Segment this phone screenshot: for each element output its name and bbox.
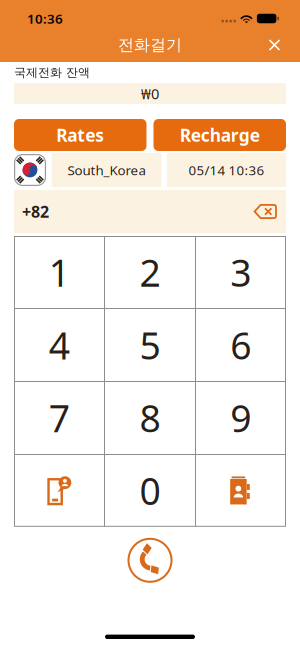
button[interactable]: 1 [14, 236, 105, 309]
staticText: South_Korea [67, 161, 145, 179]
staticText: 7 [49, 393, 70, 443]
staticText: 4 [49, 320, 70, 370]
staticText: 5 [139, 320, 160, 370]
staticText: Recharge [180, 123, 260, 146]
button[interactable]: Country [14, 154, 46, 186]
button[interactable]: 7 [14, 381, 105, 454]
button[interactable]: 6 [195, 309, 286, 381]
button[interactable]: 9 [195, 381, 286, 454]
button[interactable]: Close [269, 39, 300, 50]
button[interactable]: 8 [105, 381, 195, 454]
button[interactable]: Rates [14, 119, 146, 151]
staticText: 05/14 10:36 [188, 161, 264, 179]
button[interactable]: Call [127, 538, 172, 583]
button[interactable]: 5 [105, 309, 195, 381]
staticText: Rates [56, 123, 104, 146]
staticText: 6 [230, 320, 251, 370]
staticText: 국제전화 잔액 [14, 65, 90, 80]
button[interactable]: 2 [105, 236, 195, 309]
staticText: 9 [230, 393, 251, 443]
staticText: 전화걸기 [118, 35, 182, 55]
button[interactable]: Add number to contacts [14, 454, 105, 527]
button[interactable]: 3 [195, 236, 286, 309]
button[interactable]: Delete [254, 204, 286, 219]
button[interactable]: Recharge [153, 119, 286, 151]
staticText: 1 [49, 248, 70, 297]
button[interactable]: Contacts [195, 454, 286, 527]
staticText: 8 [139, 393, 160, 443]
staticText: 2 [139, 248, 160, 297]
staticText: 0 [139, 466, 160, 515]
staticText: 10:36 [27, 10, 63, 27]
staticText: +82 [22, 201, 49, 222]
button[interactable]: 4 [14, 309, 105, 381]
staticText: ₩0 [141, 84, 159, 103]
button[interactable]: South_Korea [51, 153, 161, 187]
button[interactable]: 0 [105, 454, 195, 527]
staticText: 3 [230, 248, 251, 297]
